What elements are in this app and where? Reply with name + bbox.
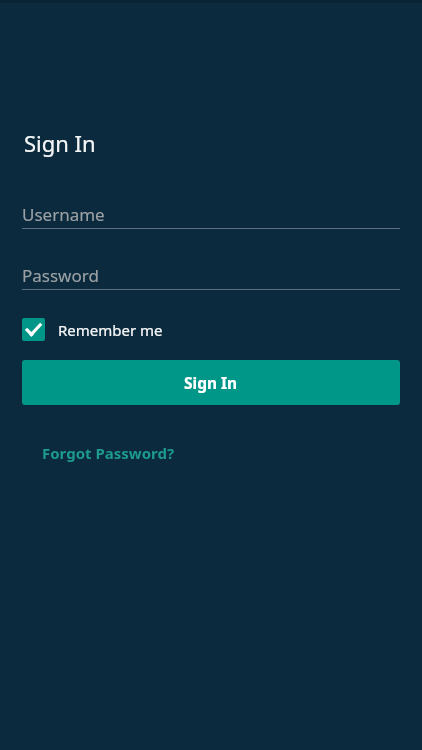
button[interactable]: Sign In (22, 360, 400, 405)
staticText: Password (22, 264, 99, 287)
staticText: Sign In (24, 128, 96, 158)
button[interactable]: Password (22, 261, 400, 290)
button[interactable]: Remember me checkbox, checked (22, 316, 175, 343)
staticText: Remember me (58, 320, 163, 340)
staticText: Sign In (184, 372, 238, 393)
button[interactable]: Username (22, 200, 400, 229)
other: Remember me checkbox, checked (22, 318, 45, 341)
staticText: Forgot Password? (42, 443, 175, 463)
button[interactable]: Forgot Password? (34, 439, 183, 467)
staticText: Username (22, 203, 105, 226)
